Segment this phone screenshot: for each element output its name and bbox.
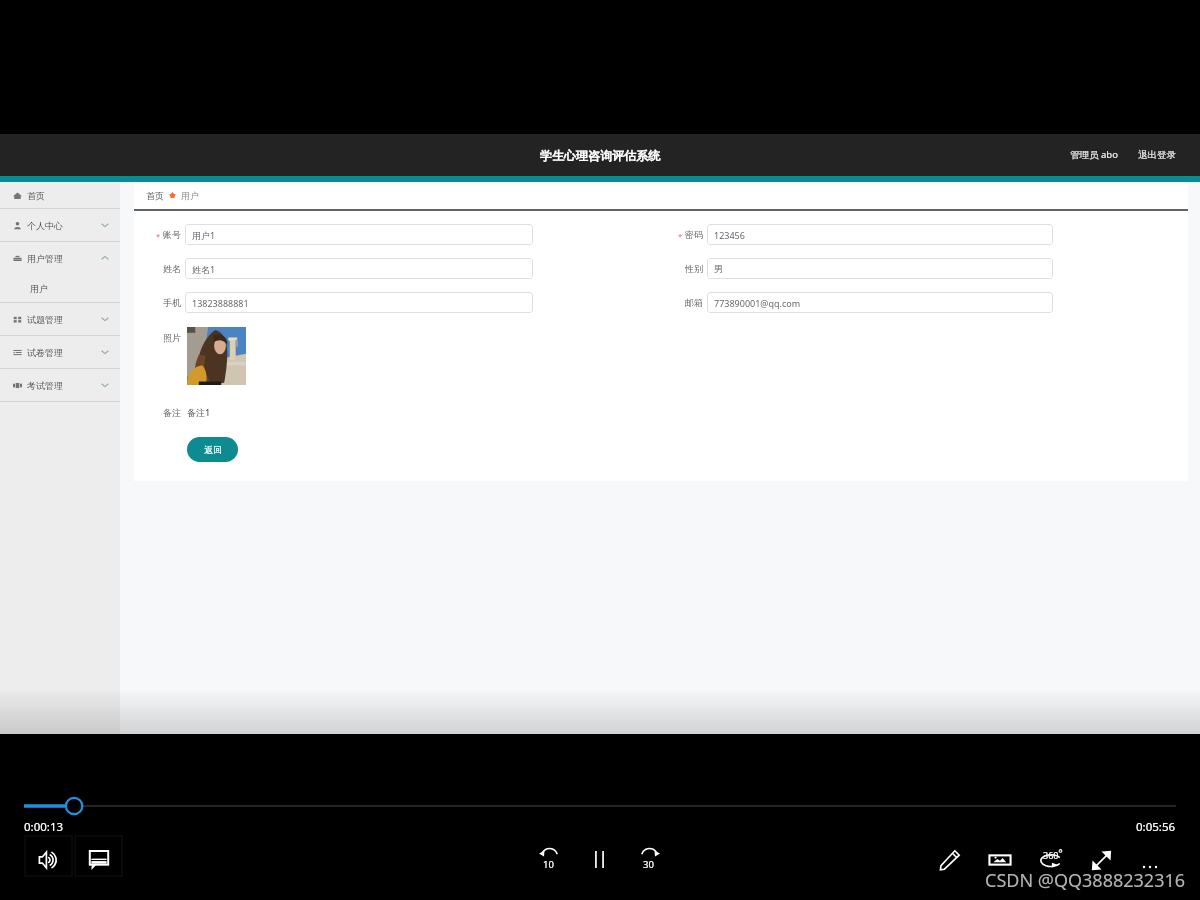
staticText: *: [678, 231, 683, 241]
button[interactable]: 考试管理: [0, 369, 120, 401]
button[interactable]: 123456: [707, 224, 1053, 245]
button[interactable]: Forward 30 seconds: [630, 839, 669, 866]
staticText: 360: [1043, 849, 1059, 861]
staticText: 用户: [30, 283, 48, 294]
button[interactable]: 13823888881: [185, 292, 533, 313]
staticText: 用户: [181, 190, 199, 201]
staticText: 试卷管理: [27, 347, 63, 358]
staticText: 退出登录: [1138, 149, 1176, 161]
button[interactable]: Annotate: [931, 841, 969, 879]
button[interactable]: 试卷管理: [0, 336, 120, 368]
staticText: 返回: [204, 444, 222, 455]
staticText: 备注1: [187, 406, 211, 418]
button[interactable]: Rewind 10 seconds: [530, 839, 569, 866]
staticText: 用户1: [192, 229, 216, 241]
button[interactable]: 用户: [0, 274, 120, 302]
button[interactable]: 用户1: [185, 224, 533, 245]
staticText: 123456: [714, 229, 745, 241]
staticText: 手机: [163, 297, 181, 308]
staticText: 0:00:13: [24, 819, 64, 835]
staticText: 姓名: [163, 263, 181, 274]
staticText: 账号: [163, 229, 181, 240]
button[interactable]: 首页: [0, 182, 120, 208]
staticText: 邮箱: [685, 297, 703, 308]
staticText: CSDN @QQ3888232316: [985, 868, 1186, 893]
button[interactable]: Subtitles: [80, 842, 118, 879]
staticText: 考试管理: [27, 380, 63, 391]
staticText: 照片: [163, 332, 181, 343]
button[interactable]: 个人中心: [0, 209, 120, 241]
staticText: 首页: [146, 190, 164, 201]
staticText: 管理员 abo: [1070, 148, 1118, 161]
staticText: 性别: [685, 263, 703, 274]
staticText: 10: [543, 858, 554, 871]
button[interactable]: 退出登录: [1135, 145, 1179, 165]
staticText: 试题管理: [27, 314, 63, 325]
button[interactable]: Volume: [30, 842, 68, 878]
button[interactable]: 试题管理: [0, 303, 120, 335]
button[interactable]: 返回: [187, 437, 238, 462]
staticText: 30: [643, 858, 654, 871]
button[interactable]: Full screen: [1082, 841, 1121, 879]
staticText: 学生心理咨询评估系统: [540, 148, 660, 163]
button[interactable]: More options: [1131, 848, 1169, 871]
staticText: 密码: [685, 229, 703, 240]
button[interactable]: 男: [707, 258, 1053, 279]
button[interactable]: 管理员 abo: [1067, 144, 1121, 165]
staticText: 姓名1: [192, 263, 216, 275]
staticText: 用户管理: [27, 253, 63, 264]
button[interactable]: 用户管理: [0, 242, 120, 274]
button[interactable]: Seek bar: [0, 795, 1200, 817]
button[interactable]: 773890001@qq.com: [707, 292, 1053, 313]
staticText: 13823888881: [192, 297, 249, 309]
staticText: 首页: [27, 190, 45, 201]
staticText: 个人中心: [27, 220, 63, 231]
button[interactable]: 用户: [181, 190, 199, 201]
staticText: *: [156, 231, 161, 241]
button[interactable]: 姓名1: [185, 258, 533, 279]
staticText: 773890001@qq.com: [714, 297, 801, 309]
button[interactable]: Pause: [584, 842, 615, 877]
button[interactable]: Picture in picture: [980, 844, 1020, 876]
staticText: 备注: [163, 407, 181, 418]
button[interactable]: 首页: [146, 190, 164, 201]
staticText: 男: [714, 263, 723, 274]
button[interactable]: 360 degree view: [1031, 840, 1071, 877]
staticText: 0:05:56: [1136, 819, 1176, 835]
